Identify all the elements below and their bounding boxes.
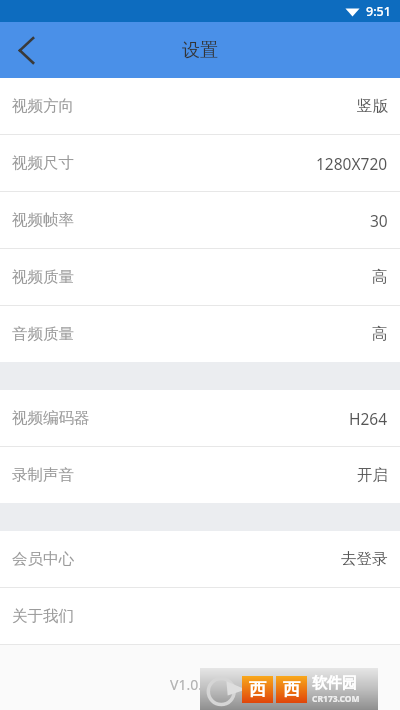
staticText: 关于我们 bbox=[12, 606, 74, 626]
staticText: 高 bbox=[372, 324, 388, 344]
staticText: 视频质量 bbox=[12, 267, 74, 287]
staticText: 西 bbox=[283, 679, 300, 700]
staticText: 设置 bbox=[182, 39, 218, 62]
staticText: CR173.COM bbox=[312, 693, 360, 705]
button[interactable]: 视频尺寸 bbox=[0, 135, 400, 191]
staticText: 会员中心 bbox=[12, 549, 74, 569]
button[interactable]: 视频质量 bbox=[0, 249, 400, 305]
button[interactable]: 视频编码器 bbox=[0, 390, 400, 446]
staticText: 9:51 bbox=[366, 3, 391, 20]
button[interactable]: 视频帧率 bbox=[0, 192, 400, 248]
staticText: 高 bbox=[372, 267, 388, 287]
staticText: 竖版 bbox=[357, 96, 388, 116]
staticText: 视频尺寸 bbox=[12, 153, 74, 173]
button[interactable]: 录制声音 bbox=[0, 447, 400, 503]
button[interactable]: 音频质量 bbox=[0, 306, 400, 362]
staticText: 视频方向 bbox=[12, 96, 74, 116]
staticText: 30 bbox=[370, 210, 388, 231]
button[interactable]: 视频方向 bbox=[0, 78, 400, 134]
staticText: V1.0.0.24 bbox=[170, 675, 230, 694]
staticText: 音频质量 bbox=[12, 324, 74, 344]
staticText: H264 bbox=[349, 408, 388, 429]
button[interactable]: 会员中心 bbox=[0, 531, 400, 587]
staticText: 1280X720 bbox=[316, 153, 388, 174]
staticText: 开启 bbox=[357, 465, 388, 485]
staticText: 视频帧率 bbox=[12, 210, 74, 230]
staticText: 去登录 bbox=[341, 549, 388, 569]
button[interactable]: 关于我们 bbox=[0, 588, 400, 644]
staticText: 软件园 bbox=[312, 674, 357, 693]
button[interactable]: Back bbox=[0, 22, 52, 78]
staticText: 西 bbox=[249, 679, 266, 700]
staticText: 录制声音 bbox=[12, 465, 74, 485]
staticText: 视频编码器 bbox=[12, 408, 90, 428]
